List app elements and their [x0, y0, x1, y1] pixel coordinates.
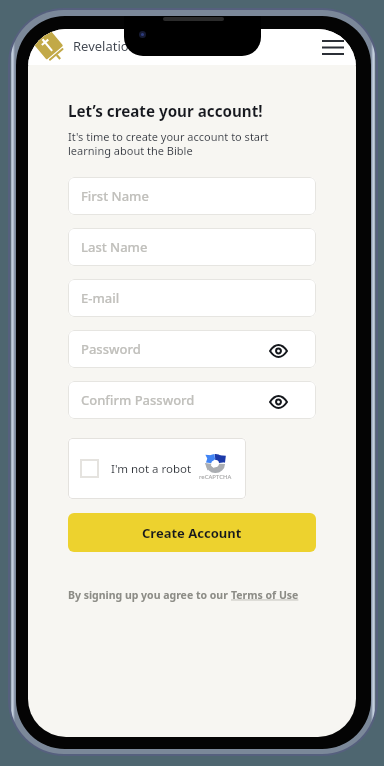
staticText: Confirm Password: [81, 391, 195, 409]
staticText: Last Name: [81, 238, 148, 256]
staticText: reCAPTCHA: [199, 473, 232, 481]
staticText: Password: [81, 340, 141, 358]
button[interactable]: Create Account: [68, 513, 316, 552]
staticText: First Name: [81, 187, 149, 205]
staticText: Create Account: [142, 524, 242, 542]
staticText: It's time to create your account to star…: [68, 129, 269, 158]
button[interactable]: Show password: [267, 340, 289, 362]
button[interactable]: E-mail: [68, 279, 316, 317]
button[interactable]: I'm not a robot checkbox: [80, 459, 99, 478]
staticText: I'm not a robot: [111, 461, 192, 477]
button[interactable]: I'm not a robot checkbox: [68, 438, 246, 499]
button[interactable]: Last Name: [68, 228, 316, 266]
staticText: Revelation: [73, 37, 137, 55]
staticText: Let’s create your account!: [68, 101, 263, 122]
button[interactable]: Confirm Password: [68, 381, 316, 419]
button[interactable]: Terms of Use: [231, 588, 299, 602]
staticText: By signing up you agree to our: [68, 588, 231, 602]
button[interactable]: Password: [68, 330, 316, 368]
button[interactable]: First Name: [68, 177, 316, 215]
button[interactable]: Show password: [267, 391, 289, 413]
button[interactable]: Menu: [316, 30, 350, 64]
staticText: E-mail: [81, 289, 120, 307]
